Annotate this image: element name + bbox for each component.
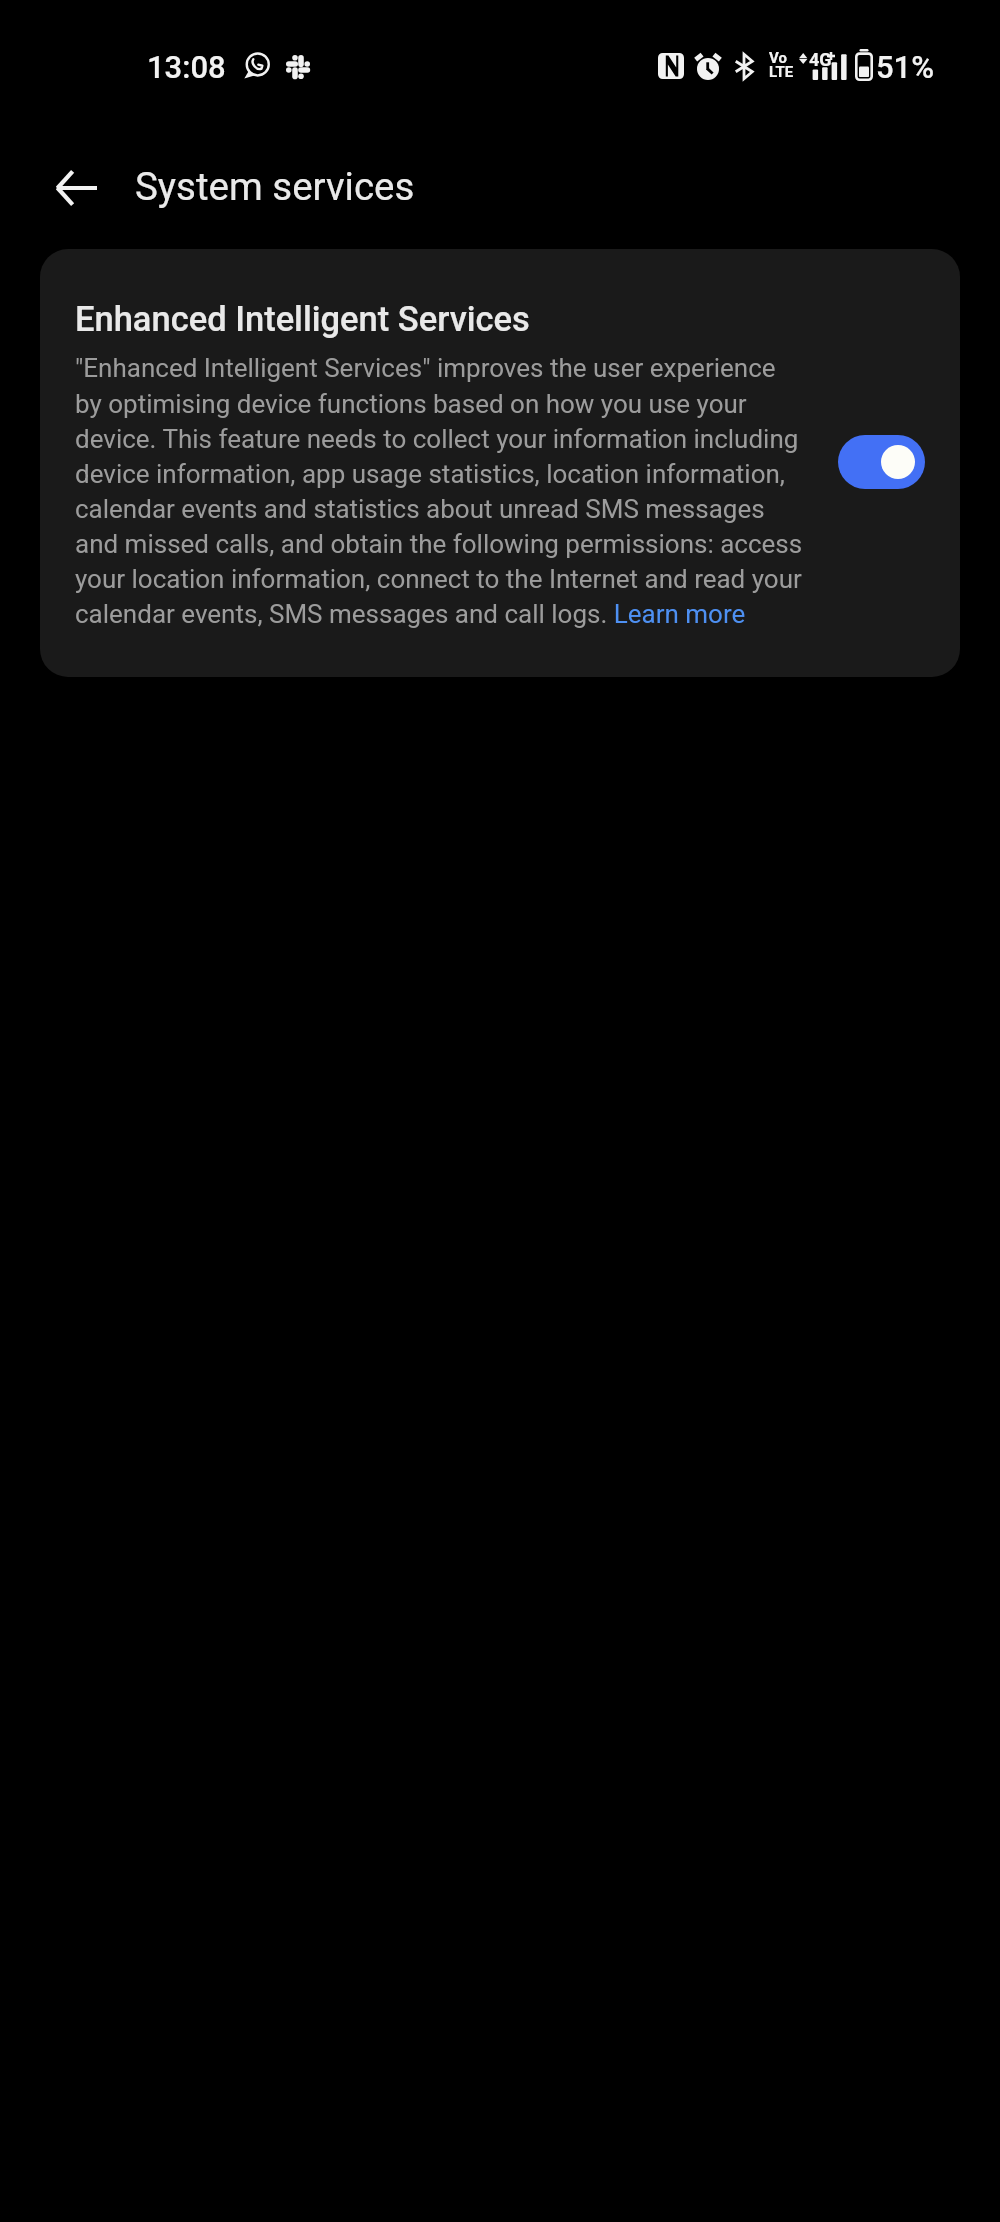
staticText: 4G <box>809 49 832 70</box>
button[interactable]: Enhanced Intelligent Services switch <box>838 435 925 489</box>
staticText: Vo <box>769 49 787 67</box>
staticText: 13:08 <box>147 49 226 85</box>
button[interactable]: Learn more <box>611 601 746 631</box>
staticText: Enhanced Intelligent Services <box>75 299 530 339</box>
button[interactable]: Enhanced Intelligent Services <box>40 249 960 677</box>
staticText: LTE <box>769 63 793 81</box>
button[interactable]: Back <box>34 146 118 230</box>
staticText: System services <box>135 164 415 209</box>
staticText: "Enhanced Intelligent Services" improves… <box>75 353 808 629</box>
staticText: 51% <box>876 49 935 85</box>
